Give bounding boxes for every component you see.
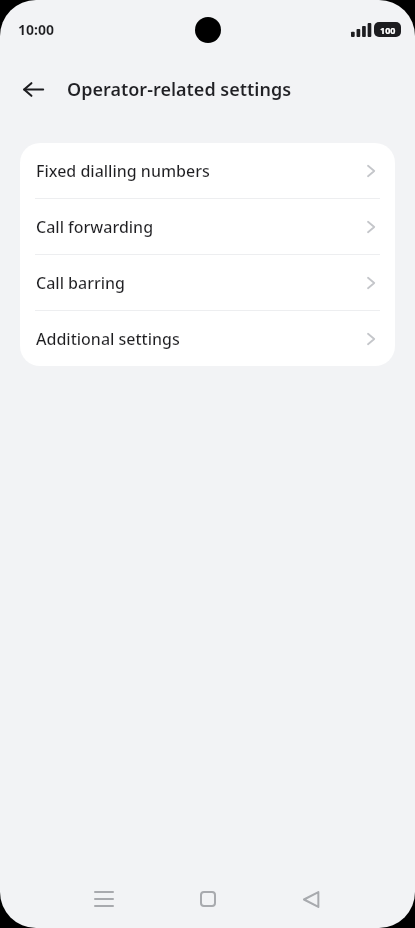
button[interactable]: Fixed dialling numbers <box>20 143 395 198</box>
staticText: Fixed dialling numbers <box>36 160 365 182</box>
button[interactable]: Back <box>11 67 55 111</box>
button[interactable]: Call barring <box>20 255 395 310</box>
button[interactable]: Back <box>289 877 333 921</box>
button[interactable]: Additional settings <box>20 311 395 366</box>
staticText: Additional settings <box>36 328 365 350</box>
staticText: Call barring <box>36 272 365 294</box>
button[interactable]: Home <box>186 877 230 921</box>
staticText: 10:00 <box>18 20 54 39</box>
button[interactable]: Recent apps <box>82 877 126 921</box>
staticText: Call forwarding <box>36 216 365 238</box>
staticText: 100 <box>380 24 396 36</box>
staticText: Operator-related settings <box>67 77 292 102</box>
button[interactable]: Call forwarding <box>20 199 395 254</box>
